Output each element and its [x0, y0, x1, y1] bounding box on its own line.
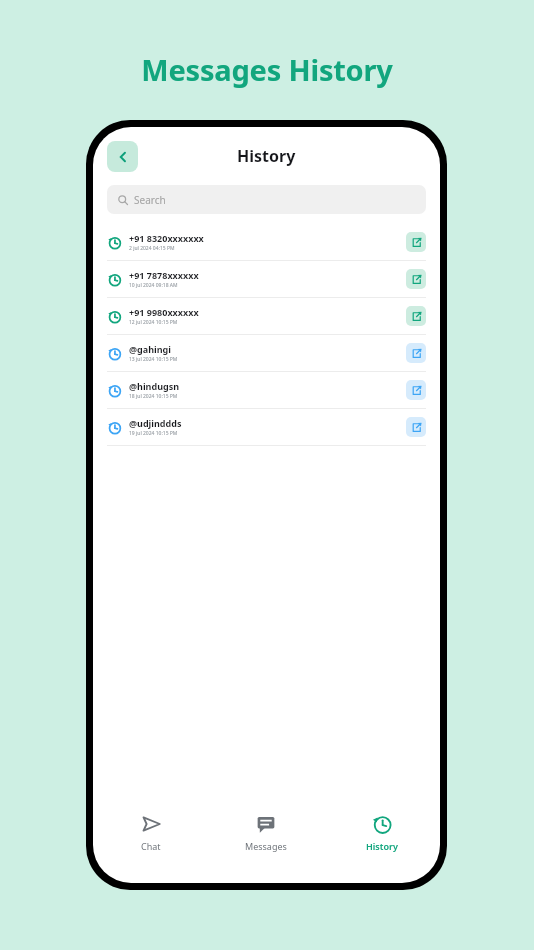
button[interactable]: Share: [406, 343, 426, 363]
button[interactable]: +91 7878xxxxxx: [93, 261, 440, 297]
button[interactable]: Share: [406, 306, 426, 326]
staticText: Messages History: [0, 50, 534, 89]
button[interactable]: History: [324, 797, 440, 867]
staticText: +91 9980xxxxxx: [129, 306, 199, 318]
button[interactable]: @udjinddds: [93, 409, 440, 445]
staticText: 12 jul 2024 10:15 PM: [129, 319, 178, 326]
button[interactable]: Back: [107, 141, 138, 172]
staticText: 10 jul 2024 09:18 AM: [129, 282, 178, 289]
staticText: History: [366, 840, 398, 852]
staticText: History: [237, 145, 296, 167]
button[interactable]: Share: [406, 269, 426, 289]
staticText: Messages: [245, 840, 287, 852]
staticText: +91 8320xxxxxxx: [129, 232, 204, 244]
button[interactable]: Share: [406, 232, 426, 252]
button[interactable]: Chat: [93, 797, 208, 867]
staticText: 18 jul 2024 10:15 PM: [129, 393, 178, 400]
button[interactable]: @gahingi: [93, 335, 440, 371]
button[interactable]: +91 8320xxxxxxx: [93, 224, 440, 260]
staticText: Search: [134, 193, 166, 207]
staticText: @udjinddds: [129, 417, 182, 429]
staticText: 19 jul 2024 10:15 PM: [129, 430, 178, 437]
button[interactable]: Share: [406, 380, 426, 400]
staticText: +91 7878xxxxxx: [129, 269, 199, 281]
button[interactable]: @hindugsn: [93, 372, 440, 408]
staticText: Chat: [141, 840, 161, 852]
button[interactable]: Search: [107, 185, 426, 214]
button[interactable]: Share: [406, 417, 426, 437]
staticText: 2 jul 2024 04:15 PM: [129, 245, 175, 252]
staticText: @hindugsn: [129, 380, 180, 392]
staticText: @gahingi: [129, 343, 171, 355]
button[interactable]: +91 9980xxxxxx: [93, 298, 440, 334]
button[interactable]: Messages: [208, 797, 324, 867]
staticText: 13 jul 2024 10:15 PM: [129, 356, 178, 363]
